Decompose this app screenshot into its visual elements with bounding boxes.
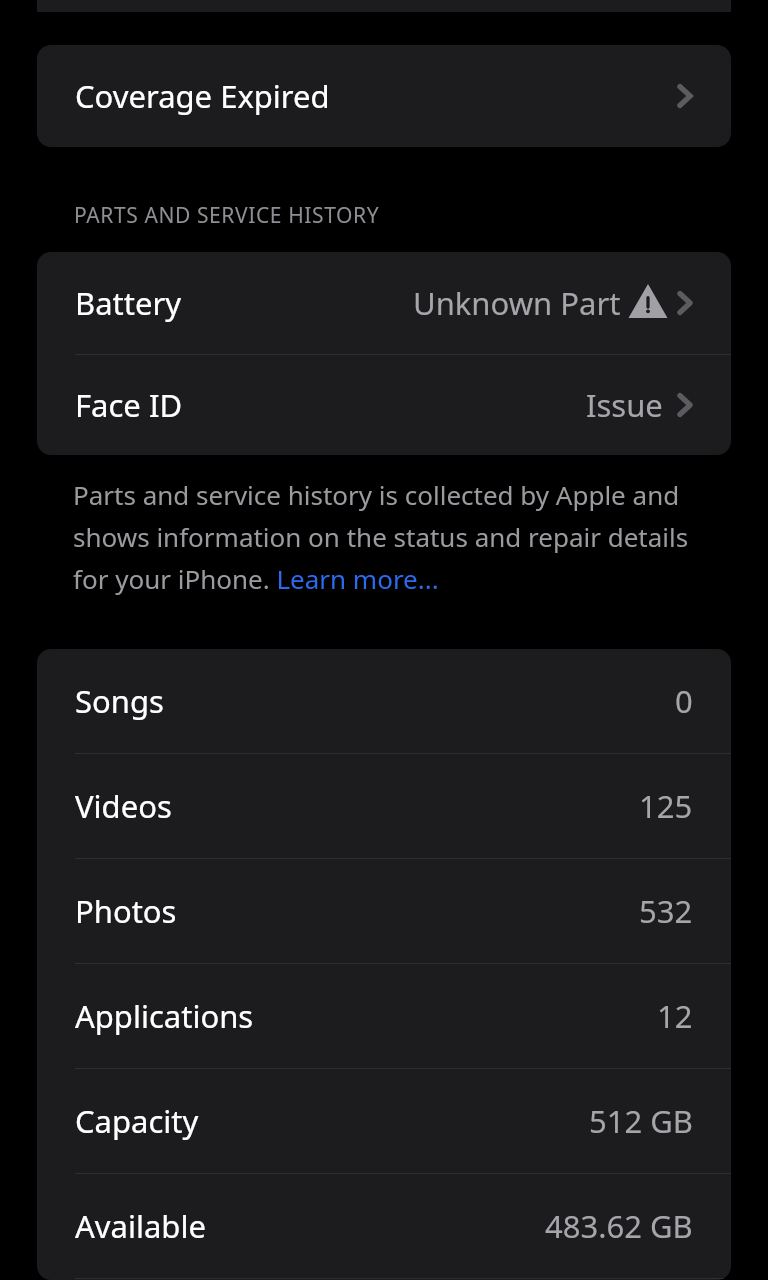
staticText: 125 bbox=[639, 785, 693, 827]
staticText: 12 bbox=[657, 995, 693, 1037]
staticText: Songs bbox=[75, 680, 164, 722]
button[interactable]: Battery bbox=[37, 252, 731, 354]
button[interactable]: Videos bbox=[37, 754, 731, 858]
staticText: 532 bbox=[639, 890, 693, 932]
button[interactable]: Capacity bbox=[37, 1069, 731, 1173]
button[interactable]: Songs bbox=[37, 649, 731, 753]
staticText: Battery bbox=[75, 282, 182, 324]
button[interactable]: Coverage Expired bbox=[37, 45, 731, 147]
staticText: 512 GB bbox=[589, 1100, 693, 1142]
staticText: Photos bbox=[75, 890, 177, 932]
staticText: Face ID bbox=[75, 384, 183, 426]
button[interactable]: Photos bbox=[37, 859, 731, 963]
staticText: 483.62 GB bbox=[545, 1205, 693, 1247]
staticText: Issue bbox=[586, 384, 663, 426]
staticText: PARTS AND SERVICE HISTORY bbox=[74, 201, 380, 230]
staticText: Coverage Expired bbox=[75, 75, 330, 117]
button[interactable]: Parts and service history is collected b… bbox=[73, 477, 725, 597]
staticText: 0 bbox=[675, 680, 693, 722]
staticText: Available bbox=[75, 1205, 206, 1247]
button[interactable]: Version bbox=[37, 1279, 731, 1280]
staticText: Capacity bbox=[75, 1100, 199, 1142]
button[interactable]: Face ID bbox=[37, 355, 731, 455]
staticText: Applications bbox=[75, 995, 254, 1037]
staticText: Videos bbox=[75, 785, 172, 827]
staticText: Unknown Part bbox=[413, 282, 621, 324]
button[interactable]: Available bbox=[37, 1174, 731, 1278]
button[interactable]: Applications bbox=[37, 964, 731, 1068]
